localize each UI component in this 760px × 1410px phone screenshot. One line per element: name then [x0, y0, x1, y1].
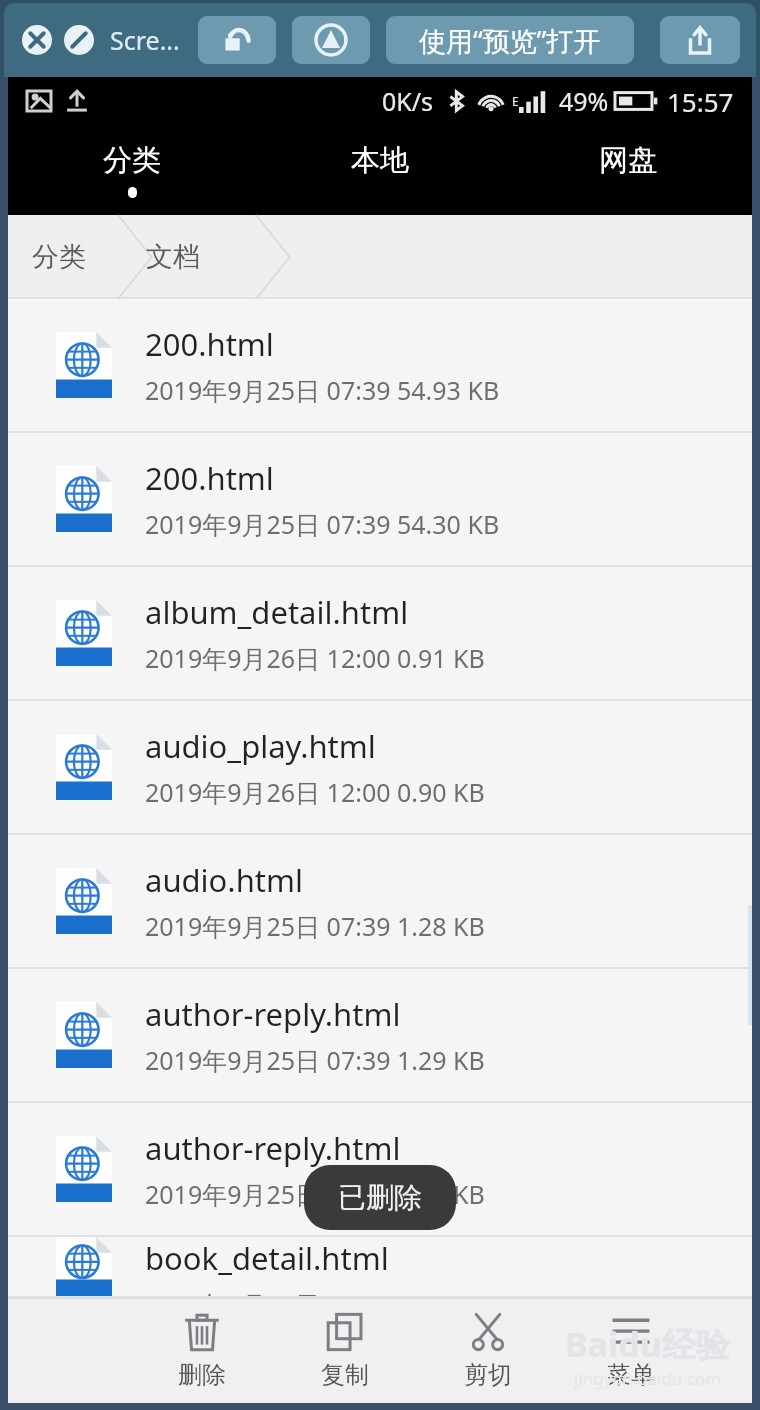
- button[interactable]: Rotate: [198, 16, 276, 64]
- staticText: 2019年9月25日 07:39 1.18 KB: [145, 1177, 485, 1211]
- staticText: 复制: [321, 1360, 369, 1390]
- button[interactable]: author-reply.html: [8, 1103, 752, 1237]
- button[interactable]: Close: [20, 23, 54, 57]
- staticText: Scre...: [110, 23, 180, 57]
- button[interactable]: 分类: [32, 240, 86, 274]
- button[interactable]: 200.html: [8, 299, 752, 433]
- staticText: 删除: [178, 1360, 226, 1390]
- button[interactable]: 文档: [146, 240, 200, 274]
- staticText: E: [512, 93, 519, 109]
- staticText: 2019年9月25日 07:39 54.30 KB: [145, 507, 500, 541]
- staticText: jingyan.baidu.com: [574, 1367, 722, 1390]
- staticText: 分类: [32, 240, 86, 274]
- staticText: 200.html: [145, 323, 274, 365]
- button[interactable]: 复制: [273, 1298, 416, 1403]
- staticText: 49%: [559, 84, 609, 118]
- button[interactable]: Share: [660, 16, 740, 64]
- staticText: 2019年9月26日 12:00 0.95 KB: [145, 1287, 485, 1296]
- staticText: 已删除: [338, 1180, 422, 1215]
- staticText: album_detail.html: [145, 591, 409, 633]
- staticText: 2019年9月26日 12:00 0.91 KB: [145, 641, 485, 675]
- button[interactable]: 剪切: [416, 1298, 559, 1403]
- button[interactable]: 本地: [256, 125, 504, 215]
- button[interactable]: 菜单: [559, 1298, 702, 1403]
- staticText: 使用“预览”打开: [419, 22, 601, 59]
- staticText: 2019年9月26日 12:00 0.90 KB: [145, 775, 485, 809]
- staticText: 文档: [146, 240, 200, 274]
- button[interactable]: 分类: [8, 125, 256, 215]
- staticText: 15:57: [667, 84, 734, 119]
- staticText: Baidu经验: [565, 1321, 730, 1367]
- button[interactable]: Annotate: [292, 16, 370, 64]
- button[interactable]: book_detail.html: [8, 1237, 752, 1298]
- staticText: 0K/s: [382, 84, 434, 118]
- button[interactable]: album_detail.html: [8, 567, 752, 701]
- staticText: 2019年9月25日 07:39 1.29 KB: [145, 1043, 485, 1077]
- button[interactable]: audio.html: [8, 835, 752, 969]
- staticText: author-reply.html: [145, 993, 401, 1035]
- staticText: author-reply.html: [145, 1127, 401, 1169]
- staticText: 分类: [103, 142, 161, 179]
- staticText: audio.html: [145, 859, 304, 901]
- button[interactable]: 使用“预览”打开: [386, 16, 634, 64]
- staticText: 本地: [351, 142, 409, 179]
- button[interactable]: author-reply.html: [8, 969, 752, 1103]
- staticText: 剪切: [464, 1360, 512, 1390]
- staticText: 2019年9月25日 07:39 1.28 KB: [145, 909, 485, 943]
- staticText: audio_play.html: [145, 725, 376, 767]
- button[interactable]: 网盘: [504, 125, 752, 215]
- staticText: book_detail.html: [145, 1237, 389, 1279]
- button[interactable]: 200.html: [8, 433, 752, 567]
- button[interactable]: audio_play.html: [8, 701, 752, 835]
- staticText: 菜单: [607, 1360, 655, 1390]
- button[interactable]: Markup: [62, 23, 96, 57]
- button[interactable]: 删除: [130, 1298, 273, 1403]
- staticText: 200.html: [145, 457, 274, 499]
- staticText: 2019年9月25日 07:39 54.93 KB: [145, 373, 500, 407]
- staticText: 网盘: [599, 142, 657, 179]
